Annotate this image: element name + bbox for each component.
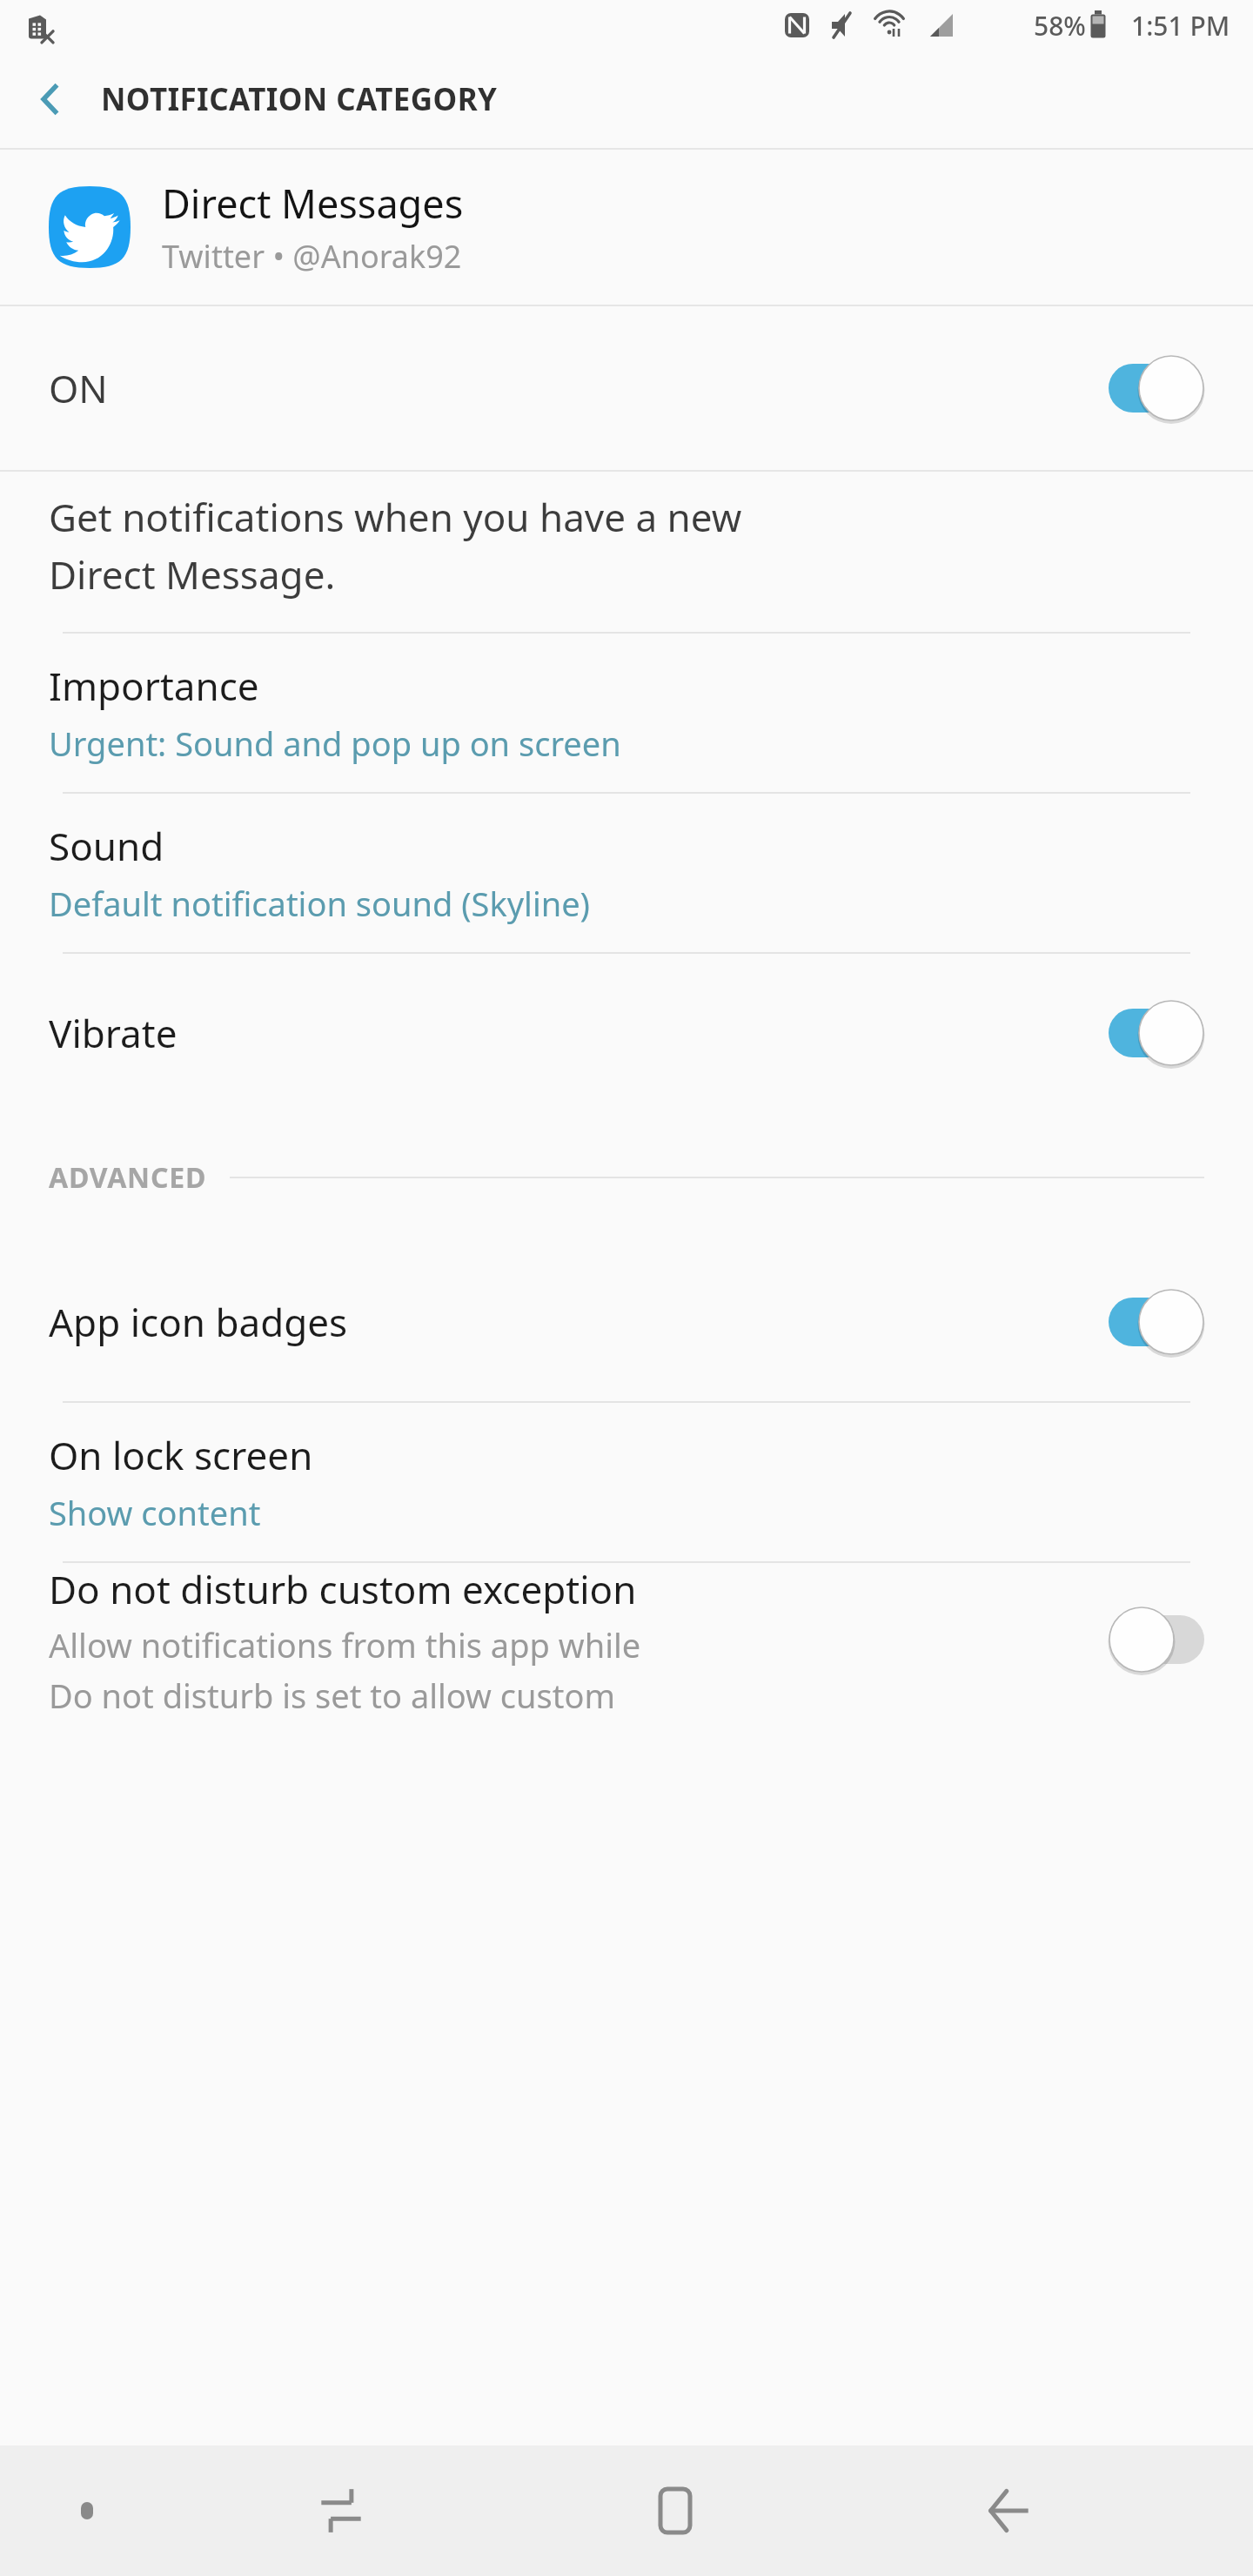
staticText: Urgent: Sound and pop up on screen <box>49 721 621 766</box>
button[interactable]: Importance <box>0 634 1253 792</box>
button[interactable]: Back <box>0 50 101 148</box>
staticText: Direct Messages <box>162 177 464 230</box>
staticText: Do not disturb custom exception <box>49 1563 637 1615</box>
staticText: 1:51 PM <box>1131 8 1230 44</box>
button[interactable]: On <box>1109 999 1204 1067</box>
staticText: Default notification sound (Skyline) <box>49 881 591 926</box>
staticText: On lock screen <box>49 1429 313 1481</box>
button[interactable]: On <box>1109 1288 1204 1356</box>
button[interactable]: Back <box>841 2445 1175 2576</box>
button[interactable]: Home <box>508 2445 841 2576</box>
staticText: Twitter • @Anorak92 <box>162 235 462 278</box>
staticText: NOTIFICATION CATEGORY <box>101 78 498 120</box>
button[interactable]: On <box>1109 354 1204 422</box>
button[interactable]: Vibrate <box>0 954 1253 1112</box>
staticText: ON <box>49 362 108 414</box>
button[interactable]: App icon badges <box>0 1243 1253 1401</box>
button[interactable]: Sound <box>0 794 1253 952</box>
staticText: App icon badges <box>49 1296 348 1348</box>
staticText: Vibrate <box>49 1007 178 1059</box>
button[interactable]: Direct Messages <box>0 150 1253 305</box>
button[interactable]: Recents <box>174 2445 508 2576</box>
staticText: Show content <box>49 1490 261 1535</box>
staticText: Sound <box>49 820 164 872</box>
button[interactable]: ON <box>0 306 1253 470</box>
staticText: Importance <box>49 660 259 712</box>
button[interactable]: On lock screen <box>0 1403 1253 1561</box>
button[interactable]: Off <box>1109 1606 1204 1674</box>
staticText: Get notifications when you have a new Di… <box>49 491 742 600</box>
button[interactable]: Do not disturb custom exception <box>0 1563 1253 1715</box>
staticText: ADVANCED <box>49 1158 207 1197</box>
staticText: 58% <box>1034 8 1086 44</box>
staticText: Allow notifications from this app while … <box>49 1622 641 1715</box>
